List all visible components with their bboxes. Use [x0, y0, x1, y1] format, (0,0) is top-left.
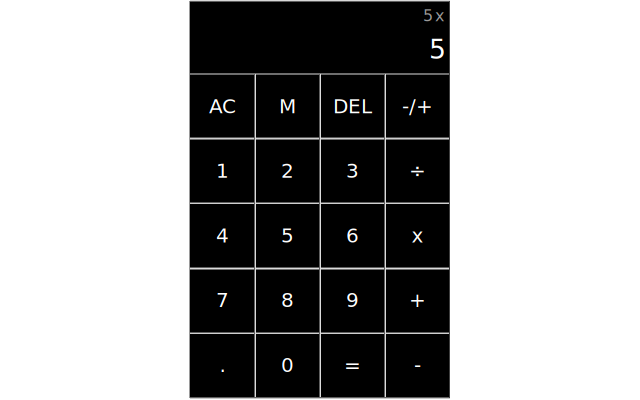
staticText: 4	[216, 224, 229, 247]
staticText: -/+	[402, 95, 433, 118]
staticText: -	[414, 353, 421, 377]
staticText: AC	[209, 95, 236, 118]
staticText: .	[219, 353, 225, 377]
staticText: +	[409, 288, 426, 312]
staticText: 9	[346, 288, 359, 312]
staticText: 8	[281, 288, 294, 312]
button[interactable]: +	[385, 268, 450, 332]
button[interactable]: x	[385, 203, 450, 268]
button[interactable]: 2	[255, 139, 320, 203]
button[interactable]: 9	[320, 268, 385, 332]
button[interactable]: 4	[190, 203, 255, 268]
button[interactable]: 8	[255, 268, 320, 332]
button[interactable]: DEL	[320, 74, 385, 139]
staticText: =	[344, 353, 361, 377]
button[interactable]: -	[385, 332, 450, 398]
button[interactable]: 0	[255, 332, 320, 398]
staticText: 0	[281, 353, 294, 377]
staticText: 7	[216, 288, 229, 312]
button[interactable]: ÷	[385, 139, 450, 203]
staticText: DEL	[333, 95, 372, 118]
staticText: 5 x	[423, 6, 444, 25]
button[interactable]: 6	[320, 203, 385, 268]
staticText: 5	[429, 34, 446, 65]
staticText: ÷	[409, 159, 426, 183]
staticText: 6	[346, 224, 359, 247]
staticText: 5	[281, 224, 294, 247]
button[interactable]: 5	[255, 203, 320, 268]
button[interactable]: 1	[190, 139, 255, 203]
button[interactable]: 7	[190, 268, 255, 332]
button[interactable]: M	[255, 74, 320, 139]
staticText: M	[279, 95, 296, 118]
staticText: 1	[216, 159, 229, 183]
staticText: x	[411, 224, 423, 247]
staticText: 2	[281, 159, 294, 183]
button[interactable]: .	[190, 332, 255, 398]
button[interactable]: 3	[320, 139, 385, 203]
button[interactable]: -/+	[385, 74, 450, 139]
button[interactable]: AC	[190, 74, 255, 139]
button[interactable]: =	[320, 332, 385, 398]
staticText: 3	[346, 159, 359, 183]
